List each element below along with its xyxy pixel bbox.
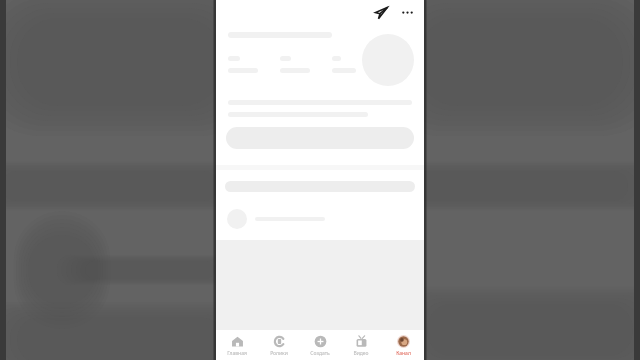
button[interactable]: Ролики bbox=[259, 330, 299, 360]
button[interactable]: Канал bbox=[383, 330, 423, 360]
button[interactable]: More options bbox=[396, 1, 418, 23]
staticText: Ролики bbox=[270, 350, 288, 357]
button[interactable]: Видео bbox=[341, 330, 381, 360]
staticText: Главная bbox=[227, 350, 247, 357]
staticText: Видео bbox=[353, 350, 369, 357]
button[interactable]: Главная bbox=[217, 330, 257, 360]
button[interactable]: Создать bbox=[300, 330, 340, 360]
staticText: Создать bbox=[310, 350, 330, 357]
button[interactable]: Share bbox=[370, 1, 392, 23]
staticText: Канал bbox=[396, 350, 411, 357]
